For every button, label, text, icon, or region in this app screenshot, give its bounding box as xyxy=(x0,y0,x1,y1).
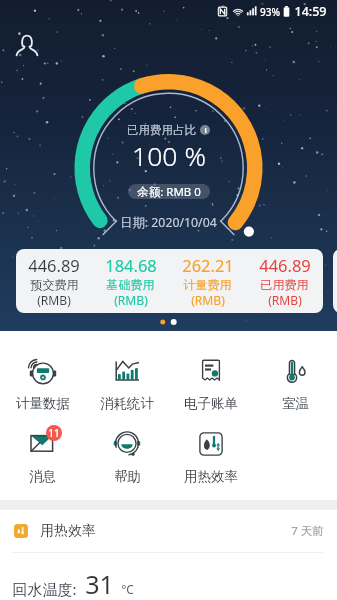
staticText: °C xyxy=(121,581,134,597)
button[interactable]: 消耗统计 xyxy=(85,356,169,412)
staticText: (RMB) xyxy=(191,292,225,308)
staticText: 184.68 xyxy=(105,254,157,276)
staticText: 100 % xyxy=(132,138,206,174)
button[interactable]: 用热效率 xyxy=(0,522,337,539)
staticText: 计量数据 xyxy=(16,395,70,412)
button[interactable]: 用热效率 xyxy=(169,429,253,485)
staticText: 室温 xyxy=(282,395,309,412)
staticText: (RMB) xyxy=(37,292,71,308)
staticText: 已用费用 xyxy=(260,277,309,292)
staticText: 日期: 2020/10/04 xyxy=(120,214,217,231)
button[interactable]: 计量数据 xyxy=(0,356,85,412)
staticText: 回水温度: xyxy=(12,579,77,599)
staticText: 14:59 xyxy=(294,3,327,20)
staticText: 消耗统计 xyxy=(100,395,154,412)
staticText: (RMB) xyxy=(114,292,148,308)
staticText: 11 xyxy=(48,426,60,440)
button[interactable]: 室温 xyxy=(253,356,337,412)
staticText: 93% xyxy=(260,5,280,19)
staticText: (RMB) xyxy=(268,292,302,308)
staticText: 262.21 xyxy=(182,254,234,276)
staticText: 计量费用 xyxy=(183,277,232,292)
button[interactable]: 帮助 xyxy=(85,429,169,485)
staticText: 预交费用 xyxy=(30,277,79,292)
button[interactable]: Profile xyxy=(14,33,40,59)
button[interactable]: 446.89 xyxy=(16,249,323,313)
staticText: i xyxy=(204,125,207,135)
staticText: 基础费用 xyxy=(106,277,155,292)
staticText: 446.89 xyxy=(28,254,80,276)
staticText: 电子账单 xyxy=(184,395,238,412)
staticText: 余额: RMB 0 xyxy=(137,184,201,199)
staticText: 帮助 xyxy=(114,468,141,485)
button[interactable]: 11 xyxy=(0,429,85,485)
staticText: 用热效率 xyxy=(184,468,238,485)
staticText: 31 xyxy=(85,567,114,600)
staticText: 446.89 xyxy=(259,254,311,276)
staticText: 已用费用占比 xyxy=(127,123,196,137)
staticText: 用热效率 xyxy=(40,522,96,539)
staticText: 7 天前 xyxy=(291,523,324,539)
staticText: 消息 xyxy=(29,468,56,485)
button[interactable]: 电子账单 xyxy=(169,356,253,412)
